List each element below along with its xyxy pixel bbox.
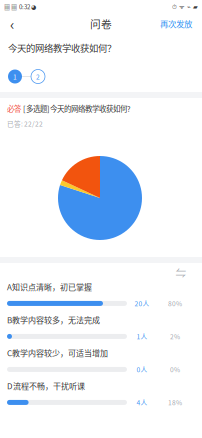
staticText: 1人 bbox=[136, 332, 147, 341]
staticText: 1 bbox=[13, 72, 17, 81]
staticText: [多选题]今天的网络教学收获如何? bbox=[21, 103, 131, 114]
staticText: 今天的网络教学收获如何？ bbox=[8, 41, 116, 54]
staticText: 2 bbox=[36, 72, 40, 81]
staticText: 已答: 22/22 bbox=[7, 119, 43, 128]
staticText: ‹ bbox=[10, 13, 14, 34]
staticText: 0人 bbox=[136, 365, 147, 374]
staticText: A知识点清晰，初已掌握 bbox=[7, 281, 92, 293]
staticText: 再次发放 bbox=[160, 17, 192, 30]
staticText: 必答 bbox=[7, 103, 21, 114]
button[interactable]: 返回 bbox=[0, 13, 24, 33]
staticText: 80% bbox=[168, 299, 182, 308]
staticText: 4人 bbox=[136, 398, 147, 407]
button[interactable]: 再次发放 bbox=[160, 17, 202, 30]
staticText: ▦ ▦ 0:32 ◕ bbox=[4, 2, 36, 11]
button[interactable]: A知识点清晰，初已掌握 bbox=[0, 281, 202, 314]
staticText: D流程不畅，干扰听课 bbox=[7, 380, 85, 392]
staticText: B教学内容较多，无法完成 bbox=[7, 314, 100, 326]
staticText: 问卷 bbox=[90, 16, 112, 31]
staticText: 18% bbox=[168, 398, 182, 407]
staticText: 2% bbox=[170, 332, 180, 341]
staticText: 20人 bbox=[134, 299, 149, 308]
staticText: C教学内容较少，可适当增加 bbox=[7, 347, 108, 359]
staticText: ⇋ bbox=[175, 264, 186, 280]
staticText: ⏱ ᯤ ⌁ ▰ bbox=[172, 2, 198, 11]
button[interactable]: 排序 bbox=[170, 265, 192, 279]
button[interactable]: B教学内容较多，无法完成 bbox=[0, 314, 202, 347]
button[interactable]: C教学内容较少，可适当增加 bbox=[0, 347, 202, 380]
button[interactable]: D流程不畅，干扰听课 bbox=[0, 380, 202, 413]
staticText: 0% bbox=[170, 365, 180, 374]
